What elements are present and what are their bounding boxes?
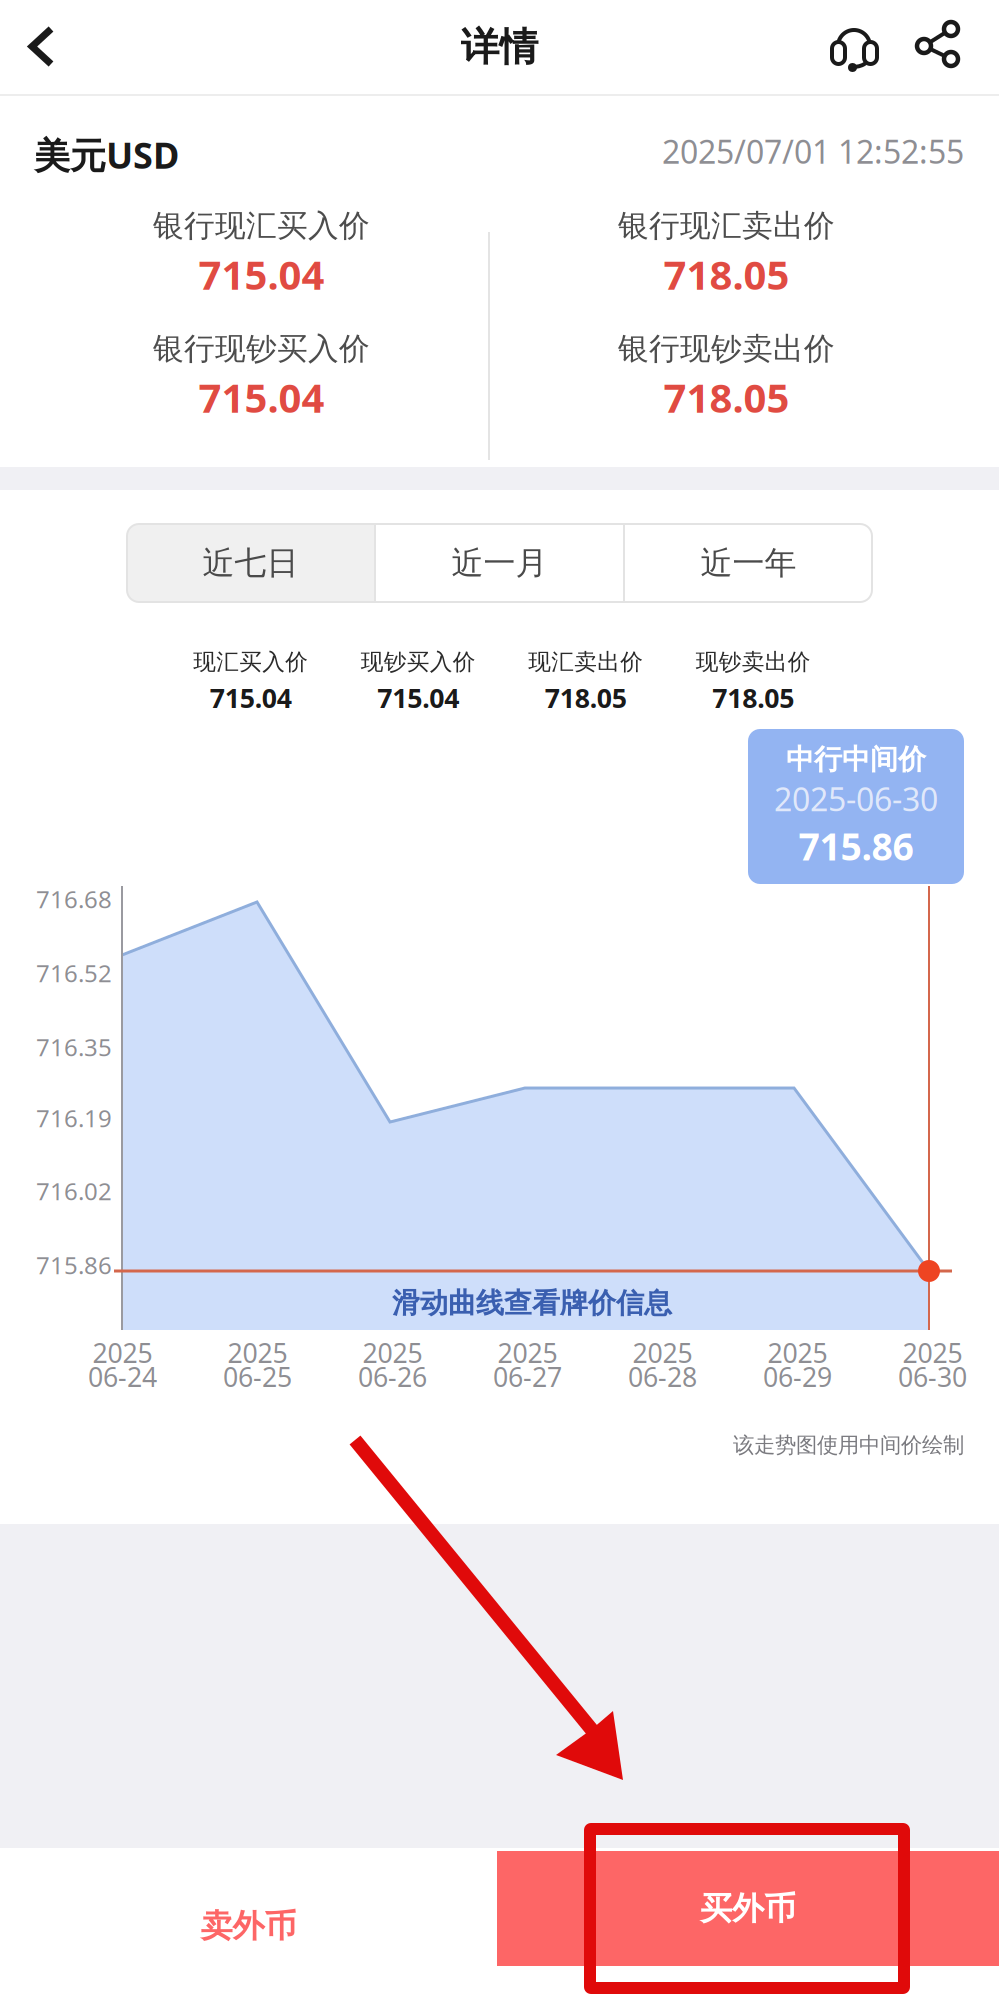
staticText: 716.68: [36, 883, 112, 915]
staticText: 2025: [92, 1335, 152, 1370]
button[interactable]: 近七日: [127, 524, 374, 602]
staticText: 银行现钞买入价: [153, 330, 370, 368]
staticText: 718.05: [712, 680, 794, 715]
button[interactable]: 近一年: [625, 524, 872, 602]
staticText: 715.86: [798, 821, 913, 871]
staticText: 详情: [460, 23, 538, 71]
staticText: 716.02: [36, 1175, 112, 1207]
staticText: 近一年: [700, 543, 796, 583]
staticText: 银行现钞卖出价: [618, 330, 835, 368]
staticText: 2025: [497, 1335, 557, 1370]
staticText: 卖外币: [200, 1906, 296, 1946]
staticText: 近七日: [202, 543, 298, 583]
staticText: 06-26: [358, 1359, 427, 1394]
button[interactable]: Share: [896, 0, 982, 96]
staticText: 06-24: [88, 1359, 157, 1394]
button[interactable]: Customer service: [810, 0, 896, 96]
staticText: 2025: [227, 1335, 287, 1370]
staticText: 2025: [632, 1335, 692, 1370]
staticText: 买外币: [700, 1889, 796, 1928]
staticText: 2025: [902, 1335, 962, 1370]
staticText: 06-25: [223, 1359, 292, 1394]
staticText: 现汇卖出价: [528, 648, 643, 676]
staticText: 715.04: [198, 248, 324, 301]
staticText: 2025/07/01 12:52:55: [662, 130, 964, 172]
staticText: 近一月: [451, 543, 547, 583]
staticText: 06-30: [898, 1359, 967, 1394]
staticText: 715.86: [36, 1249, 112, 1281]
staticText: 现钞买入价: [361, 648, 476, 676]
staticText: 06-27: [493, 1359, 562, 1394]
button[interactable]: Back: [0, 0, 92, 92]
staticText: 716.19: [36, 1102, 112, 1134]
staticText: 滑动曲线查看牌价信息: [392, 1286, 672, 1320]
staticText: 715.04: [377, 680, 459, 715]
button[interactable]: 卖外币: [0, 1848, 497, 2004]
staticText: 716.52: [36, 957, 112, 989]
staticText: 2025: [362, 1335, 422, 1370]
staticText: 该走势图使用中间价绘制: [733, 1432, 964, 1458]
staticText: 716.35: [36, 1031, 112, 1063]
staticText: 现钞卖出价: [696, 648, 811, 676]
staticText: 715.04: [198, 371, 324, 424]
staticText: 718.05: [663, 371, 789, 424]
staticText: 美元USD: [34, 131, 179, 179]
button[interactable]: 近一月: [376, 524, 623, 602]
staticText: 银行现汇买入价: [153, 207, 370, 245]
staticText: 中行中间价: [786, 742, 926, 777]
staticText: 718.05: [663, 248, 789, 301]
button[interactable]: 买外币: [497, 1851, 999, 1966]
staticText: 06-29: [763, 1359, 832, 1394]
staticText: 现汇买入价: [193, 648, 308, 676]
staticText: 2025: [767, 1335, 827, 1370]
staticText: 银行现汇卖出价: [618, 207, 835, 245]
staticText: 715.04: [210, 680, 292, 715]
staticText: 06-28: [628, 1359, 697, 1394]
staticText: 2025-06-30: [774, 778, 938, 820]
staticText: 718.05: [545, 680, 627, 715]
